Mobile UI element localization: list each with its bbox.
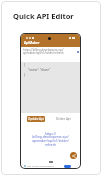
button[interactable]: Update Api (27, 116, 45, 122)
staticText: Update Api (28, 117, 44, 121)
staticText: Tap to edit parameters (27, 164, 54, 167)
staticText: https://billing.developerxx.xyz/apimaker… (23, 48, 71, 55)
staticText: https://billing.developerxx.xyz/apimaker… (31, 131, 70, 147)
staticText: { (24, 63, 26, 67)
staticText: Delete Api (56, 117, 71, 121)
staticText: "name": "share" (28, 68, 51, 72)
button[interactable]: Share (70, 152, 77, 159)
staticText: } (24, 73, 26, 77)
staticText: ApiMaker (24, 41, 40, 45)
staticText: Quick API Editor (13, 11, 74, 21)
button[interactable]: Send (64, 165, 71, 168)
button[interactable]: Delete Api (56, 116, 71, 122)
